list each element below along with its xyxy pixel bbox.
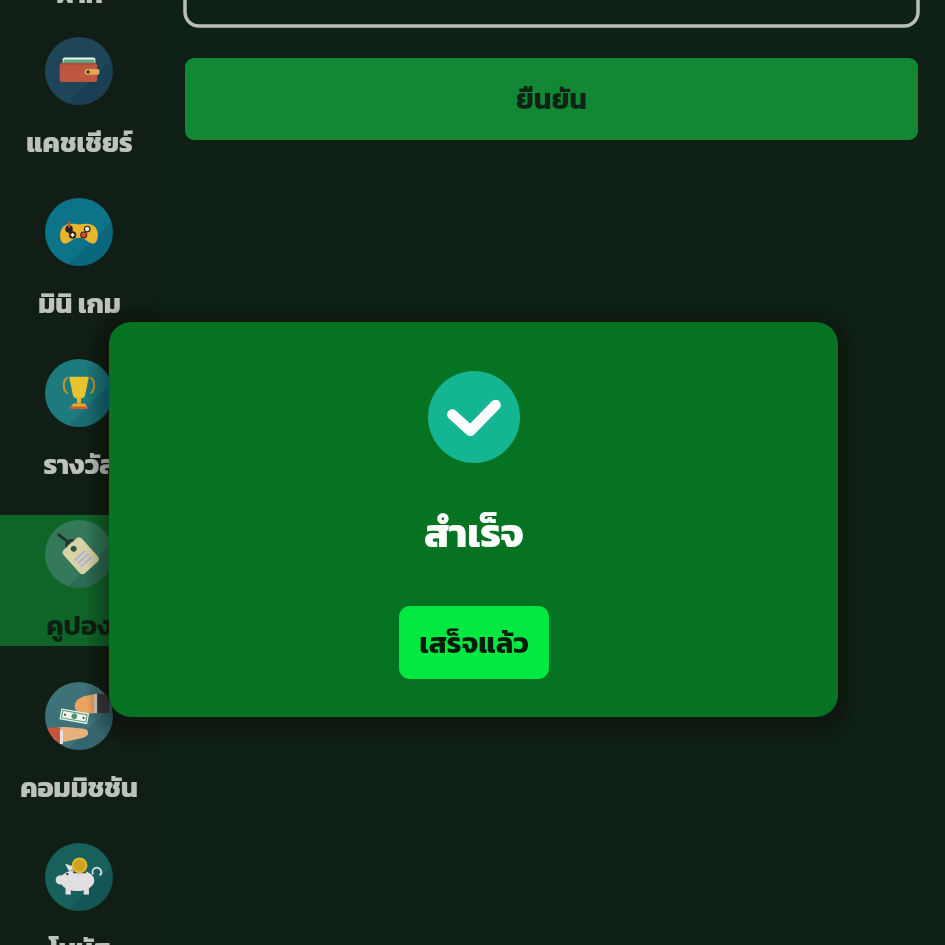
staticText: โบนัส [49,928,110,945]
button[interactable]: คูปอง [0,515,158,646]
staticText: คอมมิชชัน [20,767,138,807]
staticText: ยืนยัน [516,78,587,120]
button[interactable]: ยืนยัน [185,58,918,140]
staticText: รางวัล [43,444,116,484]
staticText: คูปอง [46,605,113,645]
button[interactable]: Amount input field [185,0,918,26]
button[interactable]: แคชเชียร์ [0,32,158,163]
button[interactable]: โบนัส [0,838,158,945]
staticText: แคชเชียร์ [26,122,133,162]
staticText: เสร็จแล้ว [419,621,529,664]
button[interactable]: เสร็จแล้ว [399,606,549,679]
staticText: สำเร็จ [424,503,524,563]
staticText: ฝาก [56,0,103,3]
button[interactable]: มินิ เกม [0,193,158,324]
staticText: มินิ เกม [38,283,121,323]
button[interactable]: คอมมิชชัน [0,677,158,808]
button[interactable]: รางวัล [0,354,158,485]
